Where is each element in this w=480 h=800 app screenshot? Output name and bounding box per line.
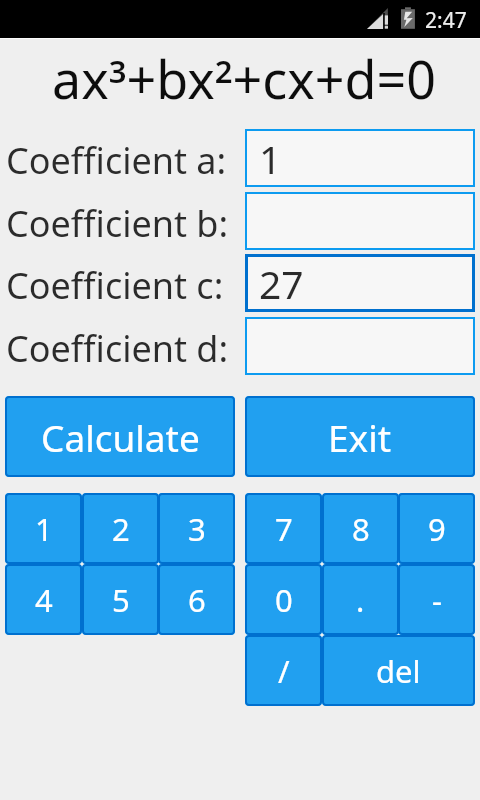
button[interactable]: 3 [158,493,235,564]
staticText: 2 [112,508,130,550]
button[interactable] [245,192,475,250]
button[interactable]: 9 [398,493,475,564]
staticText: ax3+bx2+cx+d=0 [4,43,480,114]
staticText: 9 [428,508,446,550]
staticText: - [432,579,442,621]
button[interactable]: 1 [245,129,475,187]
button[interactable]: . [322,564,399,635]
button[interactable]: del [322,635,475,706]
staticText: 1 [259,132,282,185]
button[interactable]: 8 [322,493,399,564]
other: Battery charging [400,6,416,30]
button[interactable]: 4 [5,564,82,635]
staticText: del [376,650,421,692]
staticText: . [356,579,365,621]
button[interactable]: 2 [82,493,159,564]
other: Mobile signal, no service [366,6,390,30]
staticText: / [278,650,290,692]
staticText: 5 [112,579,130,621]
staticText: 27 [259,257,304,310]
button[interactable]: - [398,564,475,635]
button[interactable]: 6 [158,564,235,635]
staticText: Coefficient a: [6,136,227,185]
staticText: 6 [188,579,206,621]
staticText: Exit [328,412,392,462]
button[interactable]: / [245,635,322,706]
staticText: Coefficient c: [6,261,224,310]
button[interactable]: Calculate [5,396,235,477]
button[interactable]: 0 [245,564,322,635]
staticText: 4 [35,579,53,621]
staticText: 7 [275,508,293,550]
staticText: 8 [352,508,370,550]
button[interactable]: 27 [245,254,475,312]
staticText: 2:47 [425,6,467,35]
button[interactable]: Exit [245,396,475,477]
button[interactable] [245,317,475,375]
button[interactable]: 7 [245,493,322,564]
staticText: 1 [35,508,53,550]
button[interactable]: 1 [5,493,82,564]
staticText: Calculate [41,412,200,462]
staticText: Coefficient b: [6,199,229,248]
button[interactable]: 5 [82,564,159,635]
staticText: 3 [188,508,206,550]
staticText: Coefficient d: [6,324,229,373]
staticText: 0 [275,579,293,621]
